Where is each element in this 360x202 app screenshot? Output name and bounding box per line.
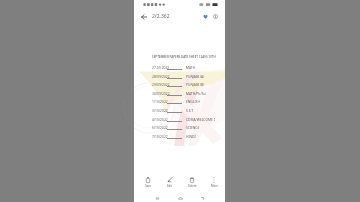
- staticText: HINDI: [186, 134, 196, 138]
- button[interactable]: More: [203, 170, 225, 194]
- staticText: Save: [145, 184, 152, 188]
- staticText: 29/09/2022: [152, 82, 170, 86]
- button[interactable]: Edit: [159, 170, 181, 194]
- staticText: 28/09/2022: [152, 74, 170, 78]
- staticText: 7/10/2022: [152, 134, 168, 138]
- button[interactable]: Favorite: [200, 11, 211, 22]
- staticText: CDMA/WELCOME I: [186, 117, 215, 121]
- staticText: SEPTEMBER PAPERS DATE SHEET CLASS 10TH: [152, 55, 216, 59]
- staticText: 2/2,362: [152, 13, 170, 20]
- staticText: 3/10/2022: [152, 108, 168, 112]
- button[interactable]: Home: [175, 194, 185, 202]
- staticText: 6/10/2022: [152, 125, 168, 129]
- button[interactable]: Recents: [152, 194, 162, 202]
- staticText: 1/10/2022: [152, 99, 168, 103]
- button[interactable]: Back: [138, 11, 149, 22]
- button[interactable]: Delete: [181, 170, 203, 194]
- staticText: PUNJABI (A): [186, 74, 205, 78]
- staticText: Edit: [167, 184, 173, 188]
- staticText: 4/10/2022: [152, 117, 168, 121]
- staticText: Delete: [188, 184, 197, 188]
- button[interactable]: Info: [210, 11, 221, 22]
- staticText: More: [211, 184, 218, 188]
- staticText: ENGLISH: [186, 99, 200, 103]
- staticText: 27-09-2022: [152, 65, 170, 69]
- button[interactable]: Back: [197, 194, 207, 202]
- staticText: PUNJABI (B): [186, 82, 205, 86]
- staticText: MATH/Ph/Sci: [186, 91, 206, 95]
- staticText: SCIENCE: [186, 125, 200, 129]
- button[interactable]: Save: [137, 170, 159, 194]
- staticText: S.S.T: [186, 108, 193, 112]
- staticText: 30/09/2022: [152, 91, 170, 95]
- staticText: MATH: [186, 65, 196, 69]
